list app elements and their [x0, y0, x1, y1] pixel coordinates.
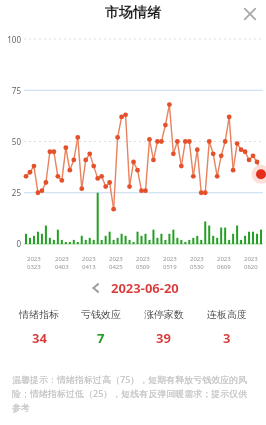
staticText: 2023 [217, 255, 231, 263]
staticText: 2023 [109, 255, 123, 263]
staticText: 情绪指标 [19, 308, 59, 321]
staticText: 0609 [217, 263, 231, 271]
staticText: 2023 [163, 255, 177, 263]
button[interactable]: 连板高度 [195, 308, 258, 347]
staticText: 0620 [244, 263, 258, 271]
staticText: 34 [32, 329, 47, 347]
staticText: 2023 [82, 255, 96, 263]
staticText: 2023 [244, 255, 258, 263]
staticText: 3 [223, 329, 231, 347]
button[interactable]: 亏钱效应 [70, 308, 132, 347]
staticText: 2023 [190, 255, 204, 263]
staticText: 0530 [190, 263, 204, 271]
staticText: 25 [0, 187, 21, 198]
staticText: 39 [156, 329, 171, 347]
staticText: 7 [97, 329, 105, 347]
staticText: 100 [0, 34, 21, 45]
staticText: 2023 [55, 255, 69, 263]
staticText: 2023 [136, 255, 150, 263]
staticText: 50 [0, 136, 21, 147]
staticText: 0 [0, 238, 21, 249]
staticText: 0425 [109, 263, 123, 271]
button[interactable]: Close [239, 3, 261, 25]
staticText: 75 [0, 85, 21, 96]
staticText: 0403 [55, 263, 69, 271]
button[interactable]: Previous day [87, 279, 105, 297]
staticText: 市场情绪 [105, 4, 161, 22]
staticText: 0519 [163, 263, 177, 271]
staticText: 温馨提示：情绪指标过高（75），短期有释放亏钱效应的风险；情绪指标过低（25），… [12, 373, 254, 414]
button[interactable]: 涨停家数 [132, 308, 195, 347]
staticText: 0413 [82, 263, 96, 271]
staticText: 亏钱效应 [81, 308, 121, 321]
staticText: 连板高度 [207, 308, 247, 321]
button[interactable]: 情绪指标 [8, 308, 70, 347]
staticText: 2023 [27, 255, 41, 263]
staticText: 0323 [27, 263, 41, 271]
staticText: 0509 [136, 263, 150, 271]
staticText: 涨停家数 [144, 308, 184, 321]
staticText: 2023-06-20 [111, 279, 179, 297]
